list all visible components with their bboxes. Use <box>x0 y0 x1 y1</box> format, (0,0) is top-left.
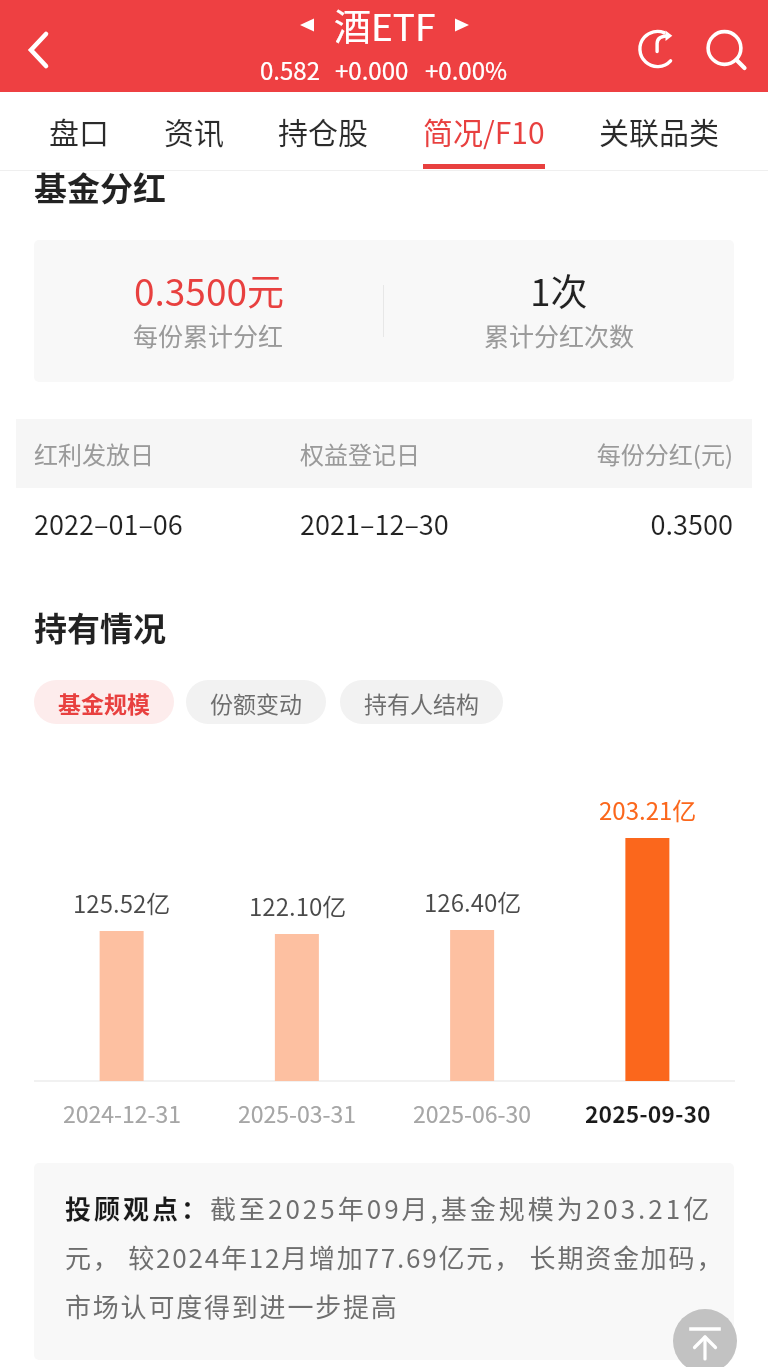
staticText: 持有情况 <box>34 603 166 651</box>
staticText: 每份累计分红 <box>133 317 284 353</box>
staticText: 2025-06-30 <box>413 1096 532 1129</box>
staticText: 投顾观点：截至2025年09月,基金规模为203.21亿 <box>65 1189 713 1238</box>
button[interactable]: Back <box>0 0 76 92</box>
staticText: 盘口 <box>49 109 109 152</box>
button[interactable]: 关联品类 <box>584 92 734 171</box>
staticText: 0.3500 <box>532 504 733 543</box>
staticText: 红利发放日 <box>34 436 154 471</box>
button[interactable]: 基金规模 <box>34 680 174 724</box>
staticText: 关联品类 <box>599 109 719 152</box>
staticText: 2021–12–30 <box>300 504 449 543</box>
staticText: 基金规模 <box>58 686 150 719</box>
staticText: 126.40亿 <box>424 884 522 919</box>
staticText: 份额变动 <box>210 686 302 719</box>
button[interactable]: Search <box>688 0 760 92</box>
staticText: 2024-12-31 <box>63 1096 182 1129</box>
staticText: 持仓股 <box>278 109 368 152</box>
staticText: 权益登记日 <box>300 436 420 471</box>
staticText: 0.582 <box>260 52 320 87</box>
staticText: 酒ETF <box>334 0 436 52</box>
button[interactable]: 盘口 <box>34 92 124 171</box>
staticText: 每份分红(元) <box>532 436 733 471</box>
staticText: 1次 <box>530 263 588 317</box>
button[interactable]: 资讯 <box>149 92 239 171</box>
staticText: 125.52亿 <box>73 885 171 920</box>
button[interactable]: Refresh <box>621 0 693 92</box>
staticText: 2025-09-30 <box>585 1096 711 1129</box>
staticText: 基金分红 <box>34 163 166 211</box>
staticText: +0.00% <box>425 52 508 87</box>
staticText: 2022–01–06 <box>34 504 183 543</box>
staticText: 203.21亿 <box>599 792 697 827</box>
button[interactable]: 份额变动 <box>186 680 326 724</box>
staticText: 122.10亿 <box>249 888 347 923</box>
staticText: 累计分红次数 <box>484 317 635 353</box>
staticText: 简况/F10 <box>423 109 545 152</box>
staticText: 2025-03-31 <box>238 1096 357 1129</box>
staticText: 元， 较2024年12月增加77.69亿元， 长期资金加码， <box>65 1238 725 1287</box>
staticText: 资讯 <box>164 109 224 152</box>
staticText: 市场认可度得到进一步提高 <box>65 1287 399 1336</box>
button[interactable]: 简况/F10 <box>408 92 560 171</box>
staticText: 0.3500元 <box>134 263 284 317</box>
button[interactable]: 持有人结构 <box>340 680 503 724</box>
button[interactable]: 持仓股 <box>263 92 383 171</box>
staticText: 持有人结构 <box>364 686 479 719</box>
staticText: +0.000 <box>335 52 409 87</box>
button[interactable]: Scroll to top <box>673 1309 737 1367</box>
